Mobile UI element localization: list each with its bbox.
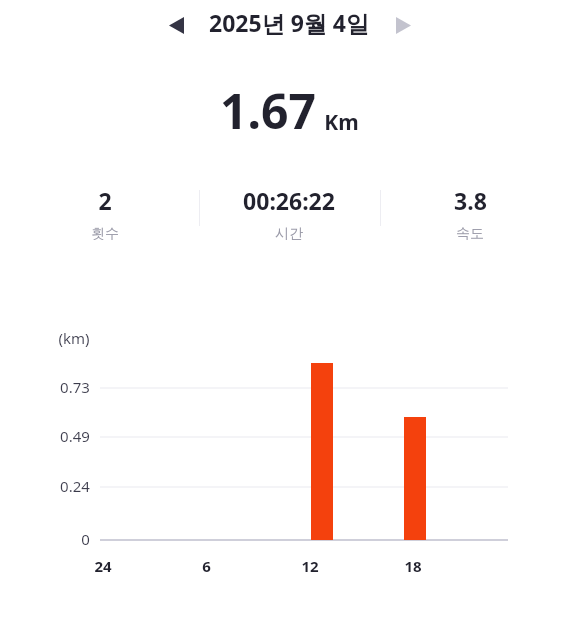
staticText: 12 <box>301 556 319 576</box>
button[interactable]: 3.8 <box>385 183 555 245</box>
staticText: 2025년 9월 4일 <box>209 7 369 38</box>
staticText: 시간 <box>275 225 303 243</box>
staticText: 0 <box>81 529 90 549</box>
staticText: 6 <box>202 556 211 576</box>
staticText: 1.67 <box>220 78 316 143</box>
staticText: 0.49 <box>60 426 90 446</box>
button[interactable]: 00:26:22 <box>204 183 374 245</box>
staticText: 24 <box>94 556 112 576</box>
button[interactable]: Next day <box>383 5 423 45</box>
staticText: 00:26:22 <box>243 185 335 216</box>
staticText: 2 <box>98 185 112 216</box>
button[interactable]: 2 <box>20 183 190 245</box>
staticText: 횟수 <box>91 225 119 243</box>
staticText: (km) <box>58 328 90 348</box>
staticText: Km <box>324 108 359 137</box>
staticText: 18 <box>404 556 422 576</box>
staticText: 0.24 <box>60 476 90 496</box>
button[interactable]: 2025년 9월 4일 <box>203 5 375 40</box>
staticText: 0.73 <box>60 377 90 397</box>
staticText: 3.8 <box>454 185 487 216</box>
staticText: 속도 <box>456 225 484 243</box>
button[interactable]: Previous day <box>156 5 196 45</box>
